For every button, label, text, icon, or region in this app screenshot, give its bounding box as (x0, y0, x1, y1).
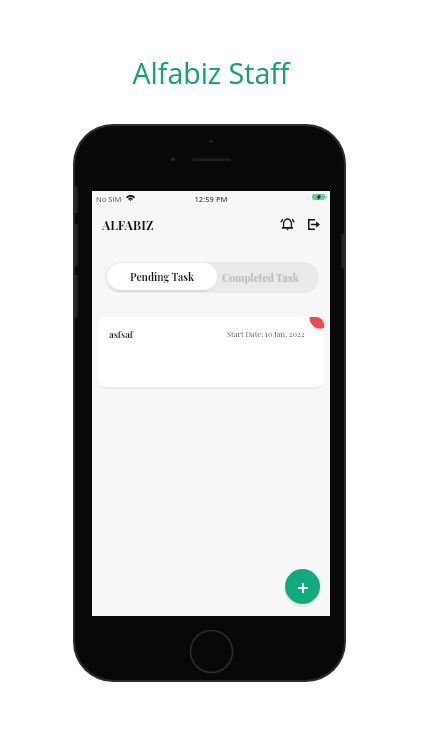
button[interactable]: Completed Task (211, 262, 309, 293)
staticText: No SIM (96, 194, 122, 204)
button[interactable]: Pending Task (107, 263, 217, 290)
staticText: ALFABIZ (102, 216, 154, 233)
staticText: Completed Task (222, 271, 299, 285)
staticText: asfsaf (109, 328, 133, 340)
staticText: Start Date: 10 Jan, 2022 (227, 329, 305, 339)
staticText: Pending Task (130, 270, 195, 284)
staticText: Alfabiz Staff (0, 54, 422, 93)
staticText: 12:59 PM (92, 194, 330, 204)
button[interactable]: Logout (303, 213, 325, 235)
button[interactable]: Add task (285, 569, 320, 604)
button[interactable]: Notifications (276, 213, 298, 235)
button[interactable]: asfsaf (98, 317, 324, 387)
